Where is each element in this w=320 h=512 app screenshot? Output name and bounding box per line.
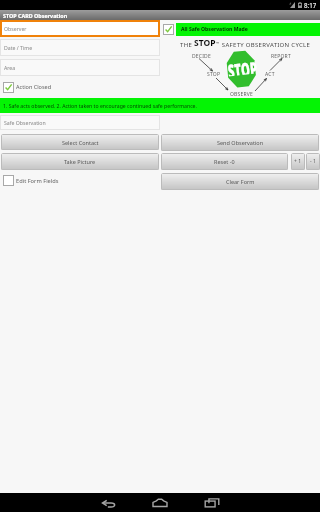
button[interactable]: Date / Time: [0, 39, 160, 56]
staticText: Take Picture: [64, 158, 96, 165]
button[interactable]: Area: [0, 59, 160, 76]
staticText: Select Contact: [62, 139, 99, 146]
button[interactable]: Recents: [198, 493, 226, 512]
staticText: Observer: [4, 25, 27, 32]
button[interactable]: Home: [146, 493, 174, 512]
staticText: Send Observation: [217, 139, 264, 146]
staticText: Safe Observation: [4, 119, 46, 126]
staticText: Edit Form Fields: [16, 177, 59, 185]
staticText: REPORT: [271, 53, 291, 60]
button[interactable]: Safe Observation: [0, 115, 160, 130]
staticText: DECIDE: [192, 53, 211, 60]
staticText: - 1: [310, 158, 316, 165]
staticText: All Safe Observation Made: [181, 26, 248, 33]
staticText: STOP: [207, 71, 221, 78]
button[interactable]: Clear Form: [161, 173, 319, 190]
staticText: Area: [4, 64, 16, 71]
button[interactable]: All Safe Observation Made: [176, 23, 320, 36]
staticText: + 1: [294, 158, 302, 165]
staticText: ACT: [265, 71, 275, 78]
staticText: Action Closed: [16, 83, 52, 90]
staticText: Reset -0: [214, 158, 235, 165]
staticText: STOP: [227, 55, 258, 76]
staticText: Date / Time: [4, 44, 33, 51]
button[interactable]: Select Contact: [1, 134, 159, 150]
staticText: OBSERVE: [230, 91, 253, 98]
staticText: THE: [180, 41, 194, 49]
staticText: STOP: [194, 37, 216, 49]
button[interactable]: Take Picture: [1, 153, 159, 170]
staticText: 8:17: [304, 1, 317, 9]
staticText: ™: [216, 41, 220, 46]
staticText: 1. Safe acts observed. 2. Action taken t…: [3, 102, 197, 109]
staticText: Clear Form: [226, 178, 255, 185]
button[interactable]: - 1: [306, 153, 320, 170]
staticText: STOP CARD Observation: [3, 12, 68, 19]
button[interactable]: + 1: [291, 153, 305, 170]
button[interactable]: Observer: [0, 20, 160, 37]
button[interactable]: Send Observation: [161, 134, 319, 151]
button[interactable]: Reset -0: [161, 153, 288, 170]
staticText: SAFETY OBSERVATION CYCLE: [220, 41, 311, 49]
button[interactable]: Back: [95, 493, 123, 512]
